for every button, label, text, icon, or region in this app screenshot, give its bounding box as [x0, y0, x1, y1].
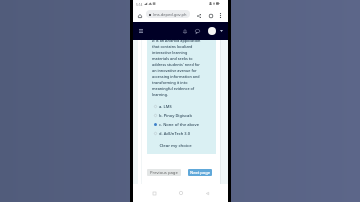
button[interactable]: Home [136, 12, 143, 19]
button[interactable]: Previous page [147, 169, 181, 176]
staticText: Previous page [150, 170, 178, 176]
button[interactable]: a. LMS [147, 102, 216, 111]
staticText: It is an Android application [152, 38, 201, 43]
staticText: Clear my choice [159, 143, 192, 149]
button[interactable]: Share [195, 12, 202, 19]
staticText: transforming it into [152, 80, 188, 85]
button[interactable]: Tabs [207, 12, 214, 19]
staticText: learning. [152, 92, 169, 97]
staticText: a. LMS [159, 104, 172, 109]
button[interactable]: Notifications [181, 27, 189, 35]
button[interactable]: Menu [137, 27, 145, 35]
staticText: 5:14 [136, 3, 143, 7]
staticText: that contains localized [152, 44, 193, 49]
button[interactable]: More options [217, 12, 224, 19]
staticText: address students' need for [152, 62, 200, 67]
staticText: d. AdUnTech 3.0 [159, 131, 190, 136]
staticText: b. Pinoy Digiscab [159, 113, 192, 118]
staticText: Next page [190, 170, 211, 176]
button[interactable]: Recents [148, 187, 160, 199]
button[interactable]: Home [175, 187, 187, 199]
staticText: an innovative avenue for [152, 68, 197, 73]
staticText: accessing information and [152, 74, 200, 79]
button[interactable]: c. None of the above [147, 120, 216, 129]
button[interactable]: Messages [193, 27, 201, 35]
button[interactable]: Next page [188, 169, 212, 176]
button[interactable]: b. Pinoy Digiscab [147, 111, 216, 120]
staticText: interactive learning [152, 50, 188, 55]
button[interactable]: Profile [208, 27, 216, 35]
button[interactable]: Back [201, 187, 213, 199]
staticText: materials and seeks to [152, 56, 193, 61]
staticText: lms.deped.gov.ph [153, 12, 187, 17]
staticText: meaningful evidence of [152, 86, 195, 91]
button[interactable]: d. AdUnTech 3.0 [147, 129, 216, 138]
button[interactable]: Clear my choice [159, 143, 192, 149]
staticText: c. None of the above [159, 122, 200, 127]
button[interactable]: lms.deped.gov.ph [146, 10, 190, 18]
